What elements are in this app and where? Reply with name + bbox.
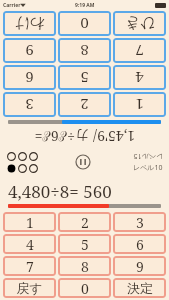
button[interactable]: 6 [3, 65, 56, 90]
button[interactable]: 2 [58, 212, 111, 232]
staticText: 4 [135, 68, 144, 88]
button[interactable]: 3 [3, 92, 56, 117]
button[interactable]: 9 [3, 38, 56, 63]
staticText: Carrier [3, 2, 21, 9]
button[interactable]: 戻す [3, 278, 56, 298]
staticText: 4 [26, 235, 34, 254]
staticText: 4,480÷8= 560 [8, 180, 112, 203]
button[interactable]: 5 [58, 65, 111, 90]
button[interactable]: 7 [113, 38, 166, 63]
staticText: 8 [80, 41, 89, 61]
button[interactable]: 2 [58, 92, 111, 117]
button[interactable]: 8 [58, 38, 111, 63]
staticText: 0 [80, 14, 89, 34]
staticText: 3 [25, 95, 34, 115]
button[interactable]: 決定 [113, 278, 166, 298]
button[interactable]: ひき [113, 11, 166, 36]
staticText: 戻す [16, 280, 43, 296]
staticText: 9 [25, 41, 34, 61]
button[interactable]: 9 [113, 256, 166, 276]
button[interactable]: 8 [58, 256, 111, 276]
staticText: 9:19 AM [75, 2, 95, 9]
staticText: 2 [80, 95, 89, 115]
button[interactable]: 3 [113, 212, 166, 232]
button[interactable]: 0 [58, 11, 111, 36]
button[interactable]: 6 [113, 234, 166, 254]
staticText: 3 [136, 213, 144, 232]
button[interactable]: Pause [75, 154, 91, 170]
staticText: 1 [26, 213, 34, 232]
staticText: 1,45'9/ カ÷ℰ6ℰ= [34, 127, 135, 146]
staticText: 5 [80, 68, 89, 88]
button[interactable]: わけ [3, 11, 56, 36]
staticText: 決定 [127, 280, 153, 296]
staticText: 5 [81, 235, 89, 254]
staticText: 6 [25, 68, 34, 88]
button[interactable]: 5 [58, 234, 111, 254]
button[interactable]: 0 [58, 278, 111, 298]
button[interactable]: 4 [3, 234, 56, 254]
button[interactable]: 7 [3, 256, 56, 276]
staticText: 9 [136, 257, 144, 276]
staticText: レベル10 [133, 163, 163, 173]
staticText: 7 [26, 257, 34, 276]
button[interactable]: 1 [113, 92, 166, 117]
button[interactable]: 1 [3, 212, 56, 232]
staticText: わけ [14, 14, 45, 33]
staticText: 0 [81, 279, 89, 298]
staticText: 1 [135, 95, 144, 115]
button[interactable]: 4 [113, 65, 166, 90]
staticText: レベル15 [133, 151, 163, 161]
staticText: 7 [135, 41, 144, 61]
staticText: 8 [81, 257, 89, 276]
staticText: 6 [136, 235, 144, 254]
staticText: ひき [124, 14, 155, 33]
staticText: 2 [81, 213, 89, 232]
